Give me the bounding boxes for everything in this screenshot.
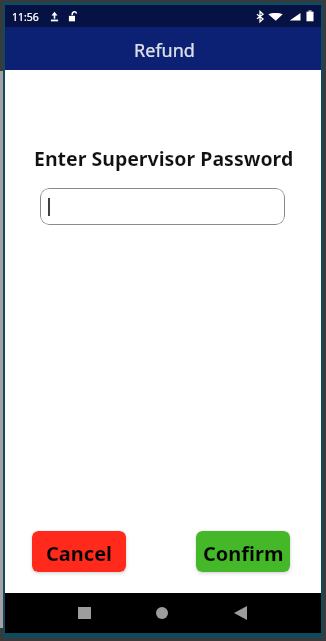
staticText: Refund (134, 38, 195, 63)
button[interactable]: Home (134, 593, 190, 633)
button[interactable]: Overview (56, 593, 112, 633)
staticText: Cancel (46, 540, 113, 567)
staticText: Confirm (203, 540, 284, 567)
staticText: 11:56 (12, 10, 39, 24)
staticText: Enter Supervisor Password (34, 145, 294, 172)
button[interactable] (40, 188, 285, 225)
button[interactable]: Confirm (196, 531, 290, 572)
button[interactable]: Cancel (32, 531, 126, 572)
button[interactable]: Back (212, 593, 268, 633)
